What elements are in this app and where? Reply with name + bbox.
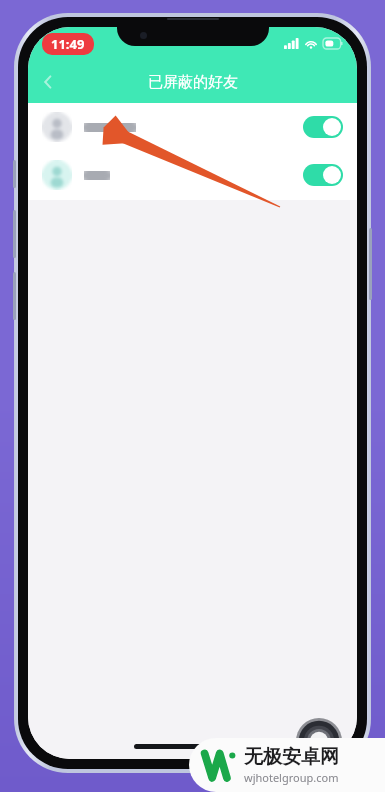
button[interactable]: Back	[28, 62, 68, 102]
staticText: 已屏蔽的好友	[148, 73, 238, 92]
button[interactable]: Assistive touch	[296, 718, 342, 759]
staticText: wjhotelgroup.com	[244, 770, 339, 785]
staticText: 无极安卓网	[244, 745, 339, 769]
staticText: 11:49	[51, 35, 85, 53]
button[interactable]: Toggle block	[28, 103, 357, 151]
button[interactable]: Toggle block	[303, 164, 343, 186]
button[interactable]: Toggle block	[28, 151, 357, 199]
button[interactable]: Toggle block	[303, 116, 343, 138]
